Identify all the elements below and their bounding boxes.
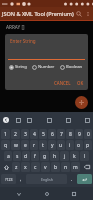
button[interactable]: Backspace: [81, 162, 92, 172]
button[interactable]: 9: [75, 129, 83, 139]
button[interactable]: y: [48, 140, 56, 150]
button[interactable]: 3: [21, 129, 29, 139]
button[interactable]: a: [4, 151, 12, 161]
button[interactable]: Shift: [1, 162, 11, 172]
button[interactable]: s: [13, 151, 21, 161]
staticText: 3: [24, 131, 27, 138]
staticText: t: [42, 142, 44, 149]
staticText: b: [54, 164, 58, 171]
button[interactable]: z: [12, 162, 20, 172]
button[interactable]: d: [22, 151, 30, 161]
staticText: Boolean: [66, 64, 83, 70]
staticText: x: [24, 164, 27, 171]
button[interactable]: Voice input: [84, 117, 91, 124]
staticText: w: [14, 142, 18, 149]
button[interactable]: String: [9, 64, 27, 70]
button[interactable]: p: [84, 140, 92, 150]
staticText: i: [69, 142, 71, 149]
staticText: g: [43, 153, 47, 160]
button[interactable]: 7: [57, 129, 65, 139]
button[interactable]: Period: [68, 174, 76, 184]
button[interactable]: 4: [30, 129, 38, 139]
staticText: ?123: [5, 177, 13, 182]
staticText: 2: [14, 131, 17, 138]
staticText: String: [15, 64, 27, 70]
staticText: n: [64, 164, 68, 171]
staticText: z: [15, 164, 18, 171]
button[interactable]: m: [71, 162, 80, 172]
button[interactable]: 6: [48, 129, 56, 139]
button[interactable]: Stickers: [65, 117, 72, 124]
staticText: h: [53, 153, 57, 160]
button[interactable]: w: [11, 140, 20, 150]
button[interactable]: k: [70, 151, 79, 161]
staticText: OK: [77, 80, 84, 86]
button[interactable]: f: [31, 151, 39, 161]
staticText: 7: [60, 131, 63, 138]
staticText: y: [51, 142, 54, 149]
staticText: JSON & XML Tool (Premium): [2, 10, 74, 17]
button[interactable]: Search: [74, 9, 83, 18]
staticText: j: [64, 153, 66, 160]
staticText: e: [24, 142, 27, 149]
staticText: l: [84, 153, 86, 160]
button[interactable]: Settings: [46, 117, 53, 124]
button[interactable]: t: [39, 140, 47, 150]
staticText: u: [59, 142, 63, 149]
button[interactable]: o: [75, 140, 83, 150]
button[interactable]: English: [26, 174, 67, 184]
staticText: d: [24, 153, 28, 160]
button[interactable]: Comma: [17, 174, 25, 184]
button[interactable]: CANCEL: [52, 78, 73, 88]
button[interactable]: Enter: [77, 174, 92, 184]
button[interactable]: 0: [84, 129, 92, 139]
button[interactable]: Boolean: [60, 64, 83, 70]
button[interactable]: 1: [1, 129, 10, 139]
button[interactable]: Clipboard: [15, 117, 22, 124]
staticText: ,: [20, 176, 22, 183]
button[interactable]: j: [60, 151, 69, 161]
button[interactable]: q: [1, 140, 10, 150]
button[interactable]: 2: [11, 129, 20, 139]
staticText: r: [33, 142, 36, 149]
button[interactable]: ?123: [1, 174, 16, 184]
button[interactable]: GIF: [26, 117, 33, 124]
button[interactable]: OK: [75, 78, 86, 88]
button[interactable]: g: [40, 151, 49, 161]
staticText: 9: [78, 131, 81, 138]
button[interactable]: l: [80, 151, 89, 161]
staticText: v: [44, 164, 47, 171]
button[interactable]: u: [57, 140, 65, 150]
button[interactable]: Close: [2, 116, 10, 124]
button[interactable]: 8: [66, 129, 74, 139]
staticText: a: [7, 153, 10, 160]
staticText: f: [34, 153, 36, 160]
button[interactable]: n: [61, 162, 70, 172]
button[interactable]: Add: [75, 96, 88, 109]
button[interactable]: 5: [39, 129, 47, 139]
button[interactable]: Back: [11, 187, 27, 200]
button[interactable]: More options: [83, 9, 92, 18]
button[interactable]: v: [41, 162, 50, 172]
staticText: p: [86, 142, 90, 149]
staticText: Number: [38, 64, 55, 70]
staticText: k: [73, 153, 76, 160]
button[interactable]: b: [51, 162, 60, 172]
staticText: ARRAY []: [6, 24, 25, 30]
staticText: s: [16, 153, 19, 160]
staticText: 4: [33, 131, 36, 138]
staticText: CANCEL: [54, 80, 71, 86]
button[interactable]: e: [21, 140, 29, 150]
staticText: 8: [69, 131, 72, 138]
button[interactable]: c: [31, 162, 40, 172]
staticText: 5: [42, 131, 45, 138]
button[interactable]: Number: [32, 64, 55, 70]
button[interactable]: i: [66, 140, 74, 150]
button[interactable]: x: [21, 162, 30, 172]
button[interactable]: Home: [39, 187, 55, 200]
button[interactable]: Recents: [66, 187, 82, 200]
staticText: c: [34, 164, 37, 171]
button[interactable]: h: [50, 151, 59, 161]
staticText: q: [4, 142, 8, 149]
button[interactable]: r: [30, 140, 38, 150]
